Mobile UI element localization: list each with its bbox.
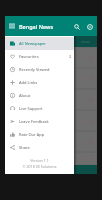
button[interactable]: Refresh [83,20,96,33]
staticText: About [19,93,31,98]
button[interactable]: Search [70,20,83,33]
button[interactable]: Recently Viewed [5,63,74,76]
button[interactable]: Add Links [5,76,74,89]
button[interactable]: Open navigation drawer [6,20,18,32]
button[interactable]: Live Support [5,102,74,115]
button[interactable]: About [5,89,74,102]
button[interactable]: Share [5,141,74,154]
button[interactable]: Leave Feedback [5,115,74,128]
staticText: Live Support [19,106,43,111]
staticText: Favourites [19,54,39,59]
staticText: 2 [69,54,72,59]
staticText: Bengal News [19,23,54,30]
button[interactable]: All Newspaper [5,37,74,50]
staticText: Add Links [19,80,38,85]
staticText: © 2018 XX Solutions [5,164,74,169]
staticText: Share [19,145,30,150]
staticText: Version 1.1 [5,158,74,163]
staticText: Rate Our App [19,132,45,137]
button[interactable]: Favourites [5,50,74,63]
staticText: All Newspaper [19,41,47,46]
staticText: Leave Feedback [19,119,49,124]
staticText: Recently Viewed [19,67,50,72]
button[interactable]: Rate Our App [5,128,74,141]
